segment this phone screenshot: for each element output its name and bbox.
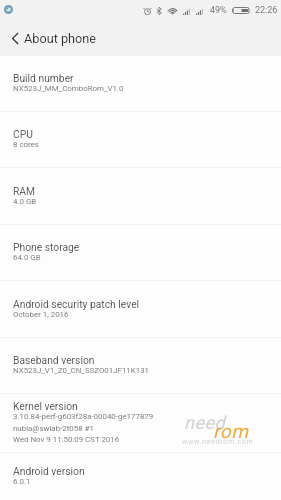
button[interactable]: Baseband version (0, 338, 281, 394)
staticText: About phone (24, 31, 97, 46)
staticText: rom (213, 420, 249, 442)
other: Back (12, 33, 18, 44)
staticText: 8 cores (13, 140, 39, 149)
staticText: Baseband version (13, 354, 95, 366)
staticText: NX523J_V1_Z0_CN_SSZO01JF11K131 (13, 366, 150, 375)
staticText: NX523J_MM_ComboRom_V1.0 (13, 84, 124, 93)
button[interactable]: Build number (0, 56, 281, 112)
staticText: 64.0 GB (13, 253, 41, 262)
staticText: 49% (210, 5, 227, 16)
button[interactable]: CPU (0, 112, 281, 168)
staticText: Build number (13, 72, 74, 84)
staticText: Kernel version (13, 400, 78, 412)
staticText: Android security patch level (13, 298, 140, 310)
staticText: RAM (13, 185, 36, 197)
button[interactable]: Phone storage (0, 225, 281, 281)
button[interactable]: RAM (0, 168, 281, 225)
staticText: CPU (13, 128, 33, 140)
staticText: October 1, 2016 (13, 310, 69, 319)
staticText: Android version (13, 465, 85, 477)
staticText: Phone storage (13, 241, 80, 253)
staticText: 22:26 (255, 5, 278, 16)
button[interactable]: Android version (0, 453, 281, 500)
staticText: 4.0 GB (13, 197, 37, 206)
staticText: 6.0.1 (13, 477, 31, 486)
staticText: www.needrom.com (182, 437, 254, 445)
button[interactable]: Back (0, 20, 281, 55)
button[interactable]: Android security patch level (0, 281, 281, 338)
staticText: 3.10.84-perf-g603f28a-00040-ge177879 nub… (13, 412, 154, 444)
button[interactable]: Kernel version (0, 394, 281, 453)
staticText: need (184, 412, 226, 433)
